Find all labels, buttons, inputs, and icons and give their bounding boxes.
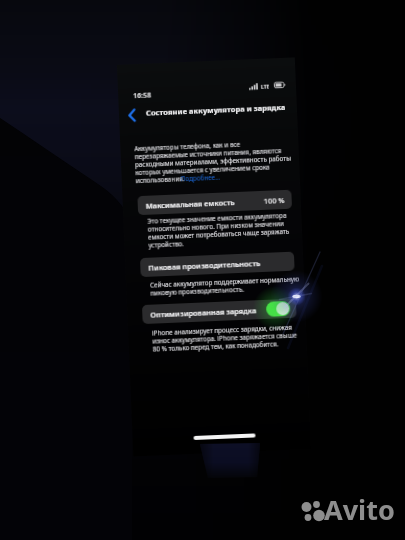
staticText: расходными материалами, эффективность ра… [135,154,291,169]
staticText: Аккумуляторы телефона, как и все [134,140,240,153]
staticText: iPhone анализирует процесс зарядки, сниж… [152,323,292,338]
staticText: которых уменьшается с увеличением срока [135,163,270,177]
staticText: 16:58 [133,90,151,101]
staticText: емкости может потребоваться чаще заряжат… [148,227,290,242]
button[interactable]: Подробнее... [180,173,221,183]
staticText: относительно нового. При низком значении [148,219,285,234]
button[interactable]: Максимальная емкость [137,190,292,215]
staticText: Avito [324,491,395,528]
button[interactable]: Optimized charging toggle [266,301,290,317]
staticText: 100 % [263,195,285,206]
staticText: пиковую производительность. [150,285,245,298]
staticText: Сейчас аккумулятор поддерживает нормальн… [150,274,300,290]
staticText: использования. [135,174,185,185]
staticText: Состояние аккумулятора и зарядка [146,102,286,118]
staticText: Это текущее значение емкости аккумулятор… [147,211,288,226]
staticText: износ аккумулятора. iPhone заряжается св… [152,331,297,346]
staticText: Максимальная емкость [146,197,235,211]
staticText: Подробнее... [180,173,221,183]
staticText: перезаряжаемые источники питания, являют… [134,146,282,161]
staticText: Оптимизированная зарядка [150,305,257,320]
staticText: 80 % только перед тем, как понадобится. [153,339,279,354]
staticText: устройство. [148,239,185,250]
button[interactable]: Back [125,106,143,125]
staticText: Пиковая производительность [148,258,260,273]
staticText: LTE [261,83,270,91]
button[interactable]: Оптимизированная зарядка [142,299,297,324]
button[interactable]: Пиковая производительность [140,252,295,277]
